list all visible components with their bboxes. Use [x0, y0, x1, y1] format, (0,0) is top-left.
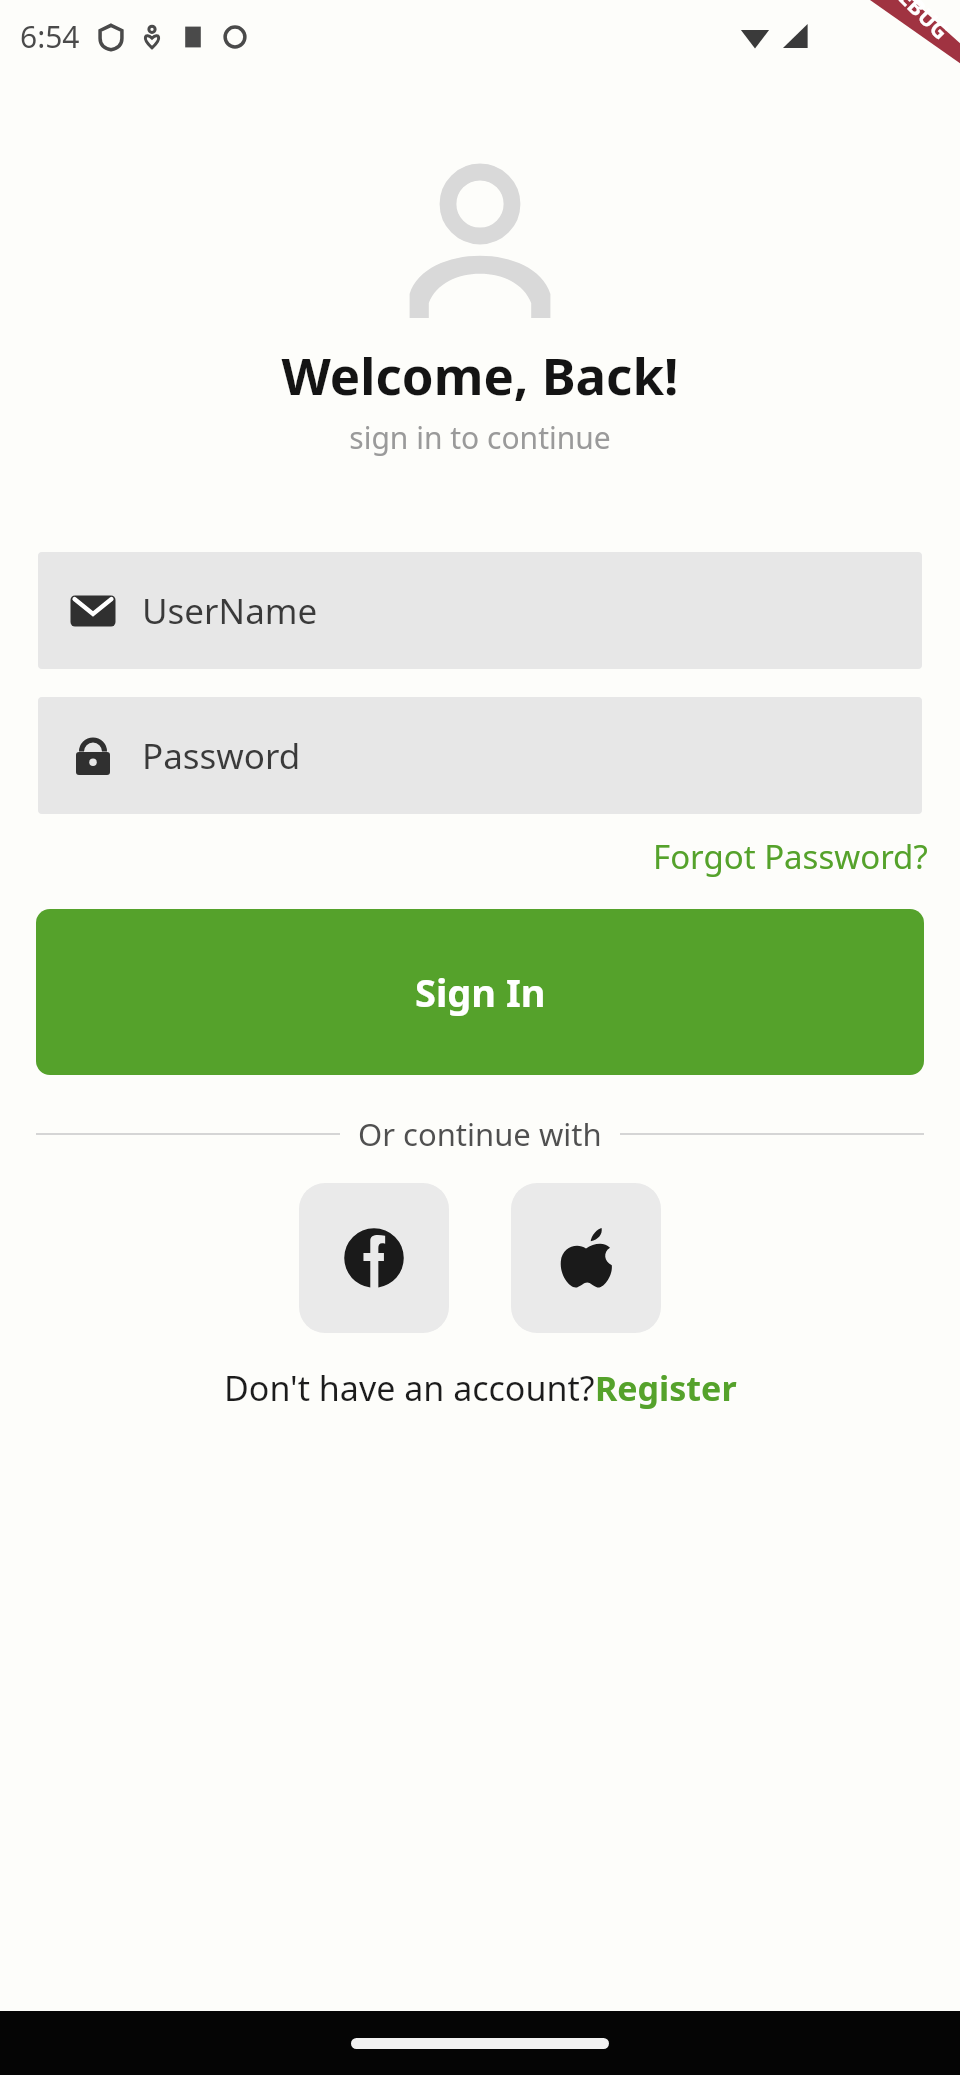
staticText: Password — [142, 732, 301, 780]
button[interactable]: Sign in with Apple — [511, 1183, 661, 1333]
button[interactable]: Register — [595, 1365, 737, 1411]
staticText: sign in to continue — [0, 417, 960, 458]
staticText: Sign In — [415, 966, 546, 1018]
staticText: Don't have an account? — [224, 1365, 595, 1411]
button[interactable]: Forgot Password? — [649, 830, 932, 883]
staticText: DEBUG — [881, 0, 956, 45]
button[interactable]: Sign In — [36, 909, 924, 1075]
staticText: Register — [595, 1365, 737, 1411]
button[interactable]: Sign in with Facebook — [299, 1183, 449, 1333]
staticText: Forgot Password? — [653, 834, 928, 879]
staticText: Or continue with — [358, 1113, 602, 1155]
staticText: Welcome, Back! — [0, 340, 960, 409]
button[interactable]: UserName — [38, 552, 922, 669]
staticText: 6:54 — [20, 16, 80, 57]
button[interactable]: Password — [38, 697, 922, 814]
staticText: UserName — [142, 587, 318, 635]
